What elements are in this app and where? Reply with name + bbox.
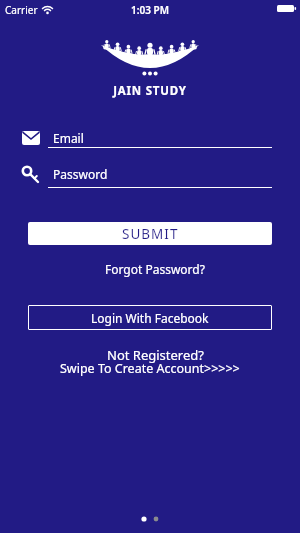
staticText: Password bbox=[53, 166, 108, 182]
button[interactable]: SUBMIT bbox=[28, 222, 272, 245]
button[interactable]: Swipe To Create Account>>>>> bbox=[0, 360, 300, 377]
staticText: 1:03 PM bbox=[131, 3, 169, 17]
button[interactable] bbox=[48, 126, 272, 148]
staticText: Forgot Password? bbox=[105, 261, 205, 277]
staticText: Swipe To Create Account>>>>> bbox=[60, 360, 240, 377]
button[interactable] bbox=[48, 166, 272, 188]
staticText: SUBMIT bbox=[122, 225, 179, 243]
button[interactable]: Forgot Password? bbox=[5, 261, 300, 277]
staticText: JAIN STUDY bbox=[0, 83, 300, 99]
staticText: Email bbox=[53, 130, 84, 146]
staticText: Login With Facebook bbox=[91, 310, 209, 326]
button[interactable]: Login With Facebook bbox=[28, 305, 272, 330]
staticText: Carrier bbox=[5, 3, 38, 17]
staticText: Not Registered? bbox=[107, 346, 204, 364]
